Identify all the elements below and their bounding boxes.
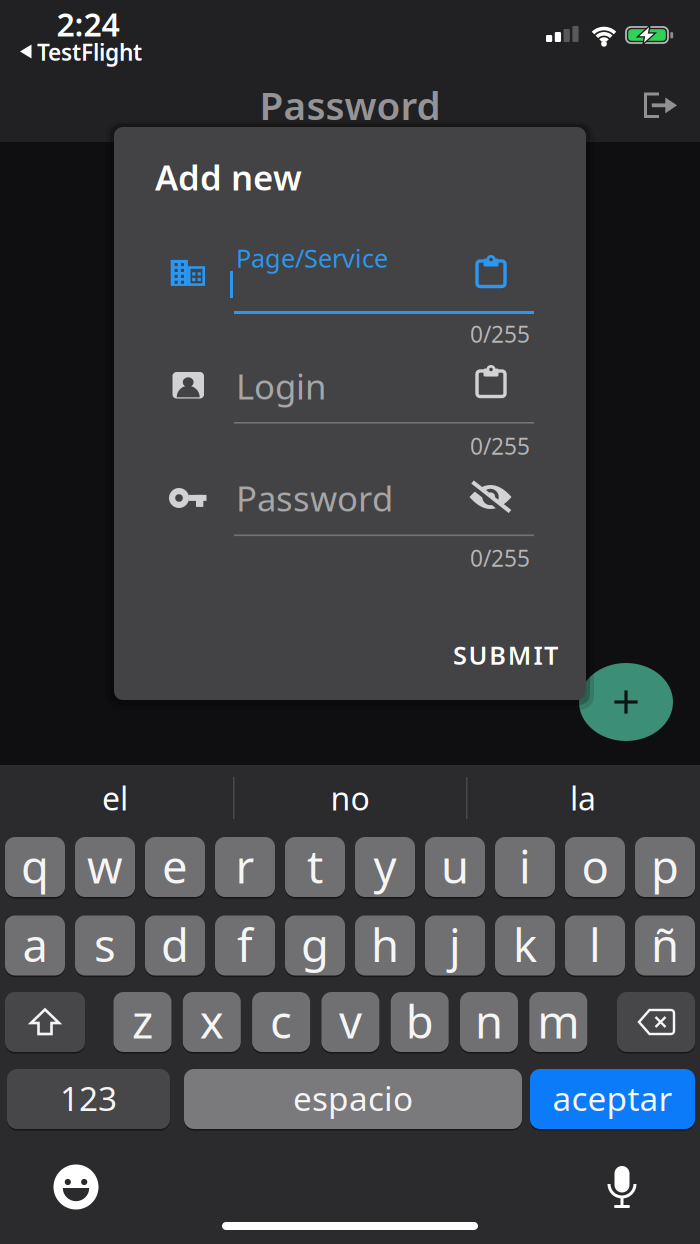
button[interactable]: r [215,836,275,898]
staticText: la [570,777,596,819]
staticText: aceptar [552,1076,672,1120]
staticText: x [200,991,224,1051]
staticText: g [301,914,329,975]
staticText: c [270,991,292,1051]
staticText: f [237,914,253,975]
staticText: 2:24 [56,3,119,45]
button[interactable]: w [75,836,135,898]
button[interactable]: z [113,991,171,1053]
button[interactable]: u [425,836,485,898]
staticText: y [373,836,396,896]
button[interactable]: k [495,914,555,976]
button[interactable]: el [35,776,195,820]
staticText: a [22,914,47,975]
staticText: 0/255 [470,319,530,349]
staticText: m [537,991,579,1051]
button[interactable]: aceptar [530,1068,695,1130]
staticText: l [589,914,601,975]
button[interactable]: c [252,991,310,1053]
staticText: 0/255 [470,431,530,461]
staticText: Password [259,79,440,131]
staticText: ñ [651,914,679,975]
staticText: h [371,914,399,975]
button[interactable]: e [145,836,205,898]
button[interactable]: Paste [474,365,508,397]
staticText: espacio [293,1076,413,1120]
button[interactable]: t [285,836,345,898]
staticText: Login [236,363,326,409]
staticText: s [94,914,116,975]
button[interactable]: y [355,836,415,898]
staticText: b [406,991,434,1051]
staticText: j [449,914,461,975]
staticText: u [441,836,469,896]
staticText: p [651,836,679,896]
button[interactable]: 123 [7,1068,170,1130]
button[interactable]: p [635,836,695,898]
button[interactable]: j [425,914,485,976]
staticText: SUBMIT [453,638,558,672]
button[interactable]: Delete [617,991,695,1053]
staticText: 0/255 [470,543,530,573]
button[interactable]: o [565,836,625,898]
button[interactable]: m [529,991,587,1053]
button[interactable]: n [460,991,518,1053]
staticText: q [21,836,49,896]
button[interactable]: v [321,991,379,1053]
staticText: Page/Service [236,241,388,275]
staticText: TestFlight [37,37,142,67]
button[interactable]: h [355,914,415,976]
button[interactable]: f [215,914,275,976]
staticText: no [330,777,369,819]
staticText: d [161,914,189,975]
staticText: Add new [155,154,302,200]
staticText: n [475,991,503,1051]
staticText: o [581,836,608,896]
staticText: k [513,914,537,975]
button[interactable]: Paste [474,255,508,287]
button[interactable]: SUBMIT [418,638,558,672]
staticText: z [132,991,153,1051]
button[interactable]: g [285,914,345,976]
staticText: Password [236,475,393,521]
button[interactable]: b [391,991,449,1053]
staticText: r [235,836,254,896]
button[interactable]: no [270,776,430,820]
button[interactable]: x [183,991,241,1053]
staticText: v [339,991,362,1051]
button[interactable]: Emoji [53,1164,99,1210]
button[interactable]: a [5,914,65,976]
staticText: 123 [60,1076,117,1120]
staticText: el [102,777,128,819]
button[interactable]: l [565,914,625,976]
staticText: e [162,836,188,896]
staticText: w [87,836,123,896]
button[interactable]: q [5,836,65,898]
button[interactable]: Show password [466,480,514,514]
button[interactable]: d [145,914,205,976]
button[interactable]: Log out [640,88,682,122]
button[interactable]: ñ [635,914,695,976]
staticText: i [519,836,531,896]
button[interactable]: i [495,836,555,898]
button[interactable]: la [503,776,663,820]
staticText: t [307,836,323,896]
button[interactable]: Shift [5,991,85,1053]
button[interactable]: Add [579,663,673,741]
button[interactable]: espacio [184,1068,522,1130]
button[interactable]: Dictate [605,1165,639,1209]
button[interactable]: s [75,914,135,976]
